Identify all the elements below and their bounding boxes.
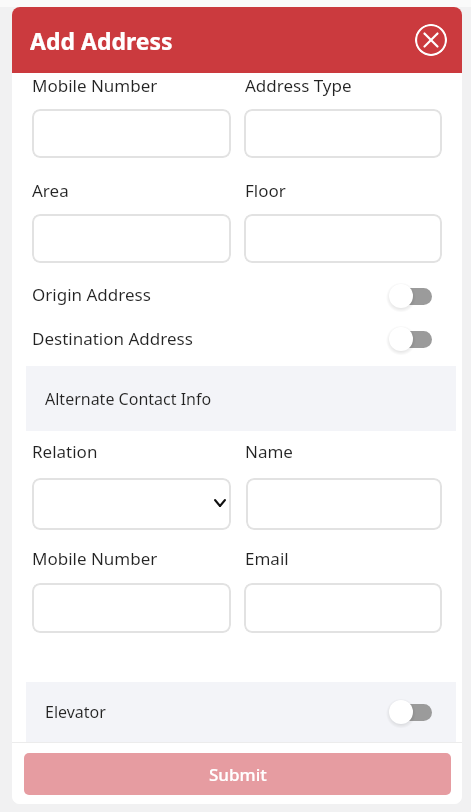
button[interactable] xyxy=(415,24,447,56)
button[interactable] xyxy=(388,283,432,309)
button[interactable] xyxy=(32,109,231,158)
button[interactable]: Submit xyxy=(24,753,451,795)
staticText: Address Type xyxy=(245,74,352,97)
button[interactable] xyxy=(388,699,432,725)
staticText: Mobile Number xyxy=(32,547,158,570)
button[interactable] xyxy=(388,326,432,352)
staticText: Name xyxy=(245,440,293,463)
staticText: Area xyxy=(32,179,69,202)
staticText: Add Address xyxy=(30,25,173,56)
button[interactable] xyxy=(244,109,442,158)
staticText: Submit xyxy=(209,763,267,786)
staticText: Relation xyxy=(32,440,98,463)
staticText: Alternate Contact Info xyxy=(45,388,212,410)
button[interactable] xyxy=(32,478,231,530)
button[interactable] xyxy=(32,583,231,633)
staticText: Mobile Number xyxy=(32,74,158,97)
button[interactable] xyxy=(32,214,231,263)
staticText: Origin Address xyxy=(32,283,151,306)
staticText: Elevator xyxy=(45,701,106,723)
staticText: Destination Address xyxy=(32,327,193,350)
staticText: Email xyxy=(245,547,289,570)
button[interactable] xyxy=(246,478,442,530)
staticText: Floor xyxy=(245,179,286,202)
button[interactable] xyxy=(244,583,442,633)
button[interactable] xyxy=(244,214,442,263)
